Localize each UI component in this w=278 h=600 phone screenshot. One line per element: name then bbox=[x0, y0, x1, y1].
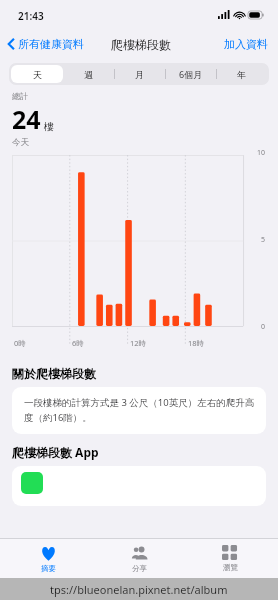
staticText: 分享 bbox=[132, 564, 147, 573]
staticText: tps://blueonelan.pixnet.net/album bbox=[50, 582, 228, 597]
staticText: 0時 bbox=[14, 338, 26, 348]
button[interactable]: 月 bbox=[114, 65, 165, 83]
staticText: 10 bbox=[257, 148, 266, 158]
staticText: 摘要 bbox=[41, 564, 56, 573]
staticText: 瀏覽 bbox=[223, 563, 238, 572]
staticText: 總計 bbox=[12, 91, 28, 101]
staticText: 24 bbox=[12, 102, 41, 136]
staticText: 0 bbox=[261, 322, 266, 332]
staticText: 爬樓梯段數 bbox=[111, 37, 171, 52]
staticText: 加入資料 bbox=[224, 37, 268, 51]
button[interactable]: 週 bbox=[63, 65, 114, 83]
staticText: 樓 bbox=[44, 120, 54, 133]
button[interactable]: 6個月 bbox=[165, 65, 216, 83]
staticText: 週 bbox=[84, 69, 93, 80]
button[interactable]: 摘要 bbox=[5, 542, 91, 576]
staticText: 6個月 bbox=[179, 68, 203, 80]
button[interactable]: 分享 bbox=[96, 542, 182, 576]
button[interactable]: 所有健康資料 bbox=[0, 34, 88, 54]
button[interactable]: 年 bbox=[216, 65, 267, 83]
staticText: 21:43 bbox=[18, 9, 44, 23]
button[interactable]: 加入資料 bbox=[214, 33, 278, 55]
staticText: 一段樓梯的計算方式是 3 公尺（10英尺）左右的爬升高度（約16階）。 bbox=[24, 396, 256, 424]
other: 分享 bbox=[131, 545, 148, 562]
staticText: 6時 bbox=[72, 338, 84, 348]
staticText: 18時 bbox=[188, 338, 205, 348]
other: 瀏覽 bbox=[222, 545, 238, 561]
button[interactable]: 天 bbox=[11, 65, 63, 83]
button[interactable]: 瀏覽 bbox=[187, 542, 273, 575]
staticText: 月 bbox=[135, 69, 144, 80]
other: 摘要 bbox=[40, 545, 57, 562]
staticText: 5 bbox=[261, 235, 266, 245]
staticText: 12時 bbox=[130, 338, 147, 348]
button[interactable]: 一段樓梯的計算方式是 3 公尺（10英尺）左右的爬升高度（約16階）。 bbox=[12, 387, 266, 434]
staticText: 年 bbox=[237, 69, 246, 80]
staticText: 關於爬樓梯段數 bbox=[12, 366, 96, 381]
staticText: 爬樓梯段數 App bbox=[12, 444, 99, 460]
staticText: 今天 bbox=[12, 137, 29, 148]
staticText: 所有健康資料 bbox=[18, 37, 84, 51]
staticText: 天 bbox=[33, 69, 42, 80]
button[interactable] bbox=[12, 466, 266, 506]
